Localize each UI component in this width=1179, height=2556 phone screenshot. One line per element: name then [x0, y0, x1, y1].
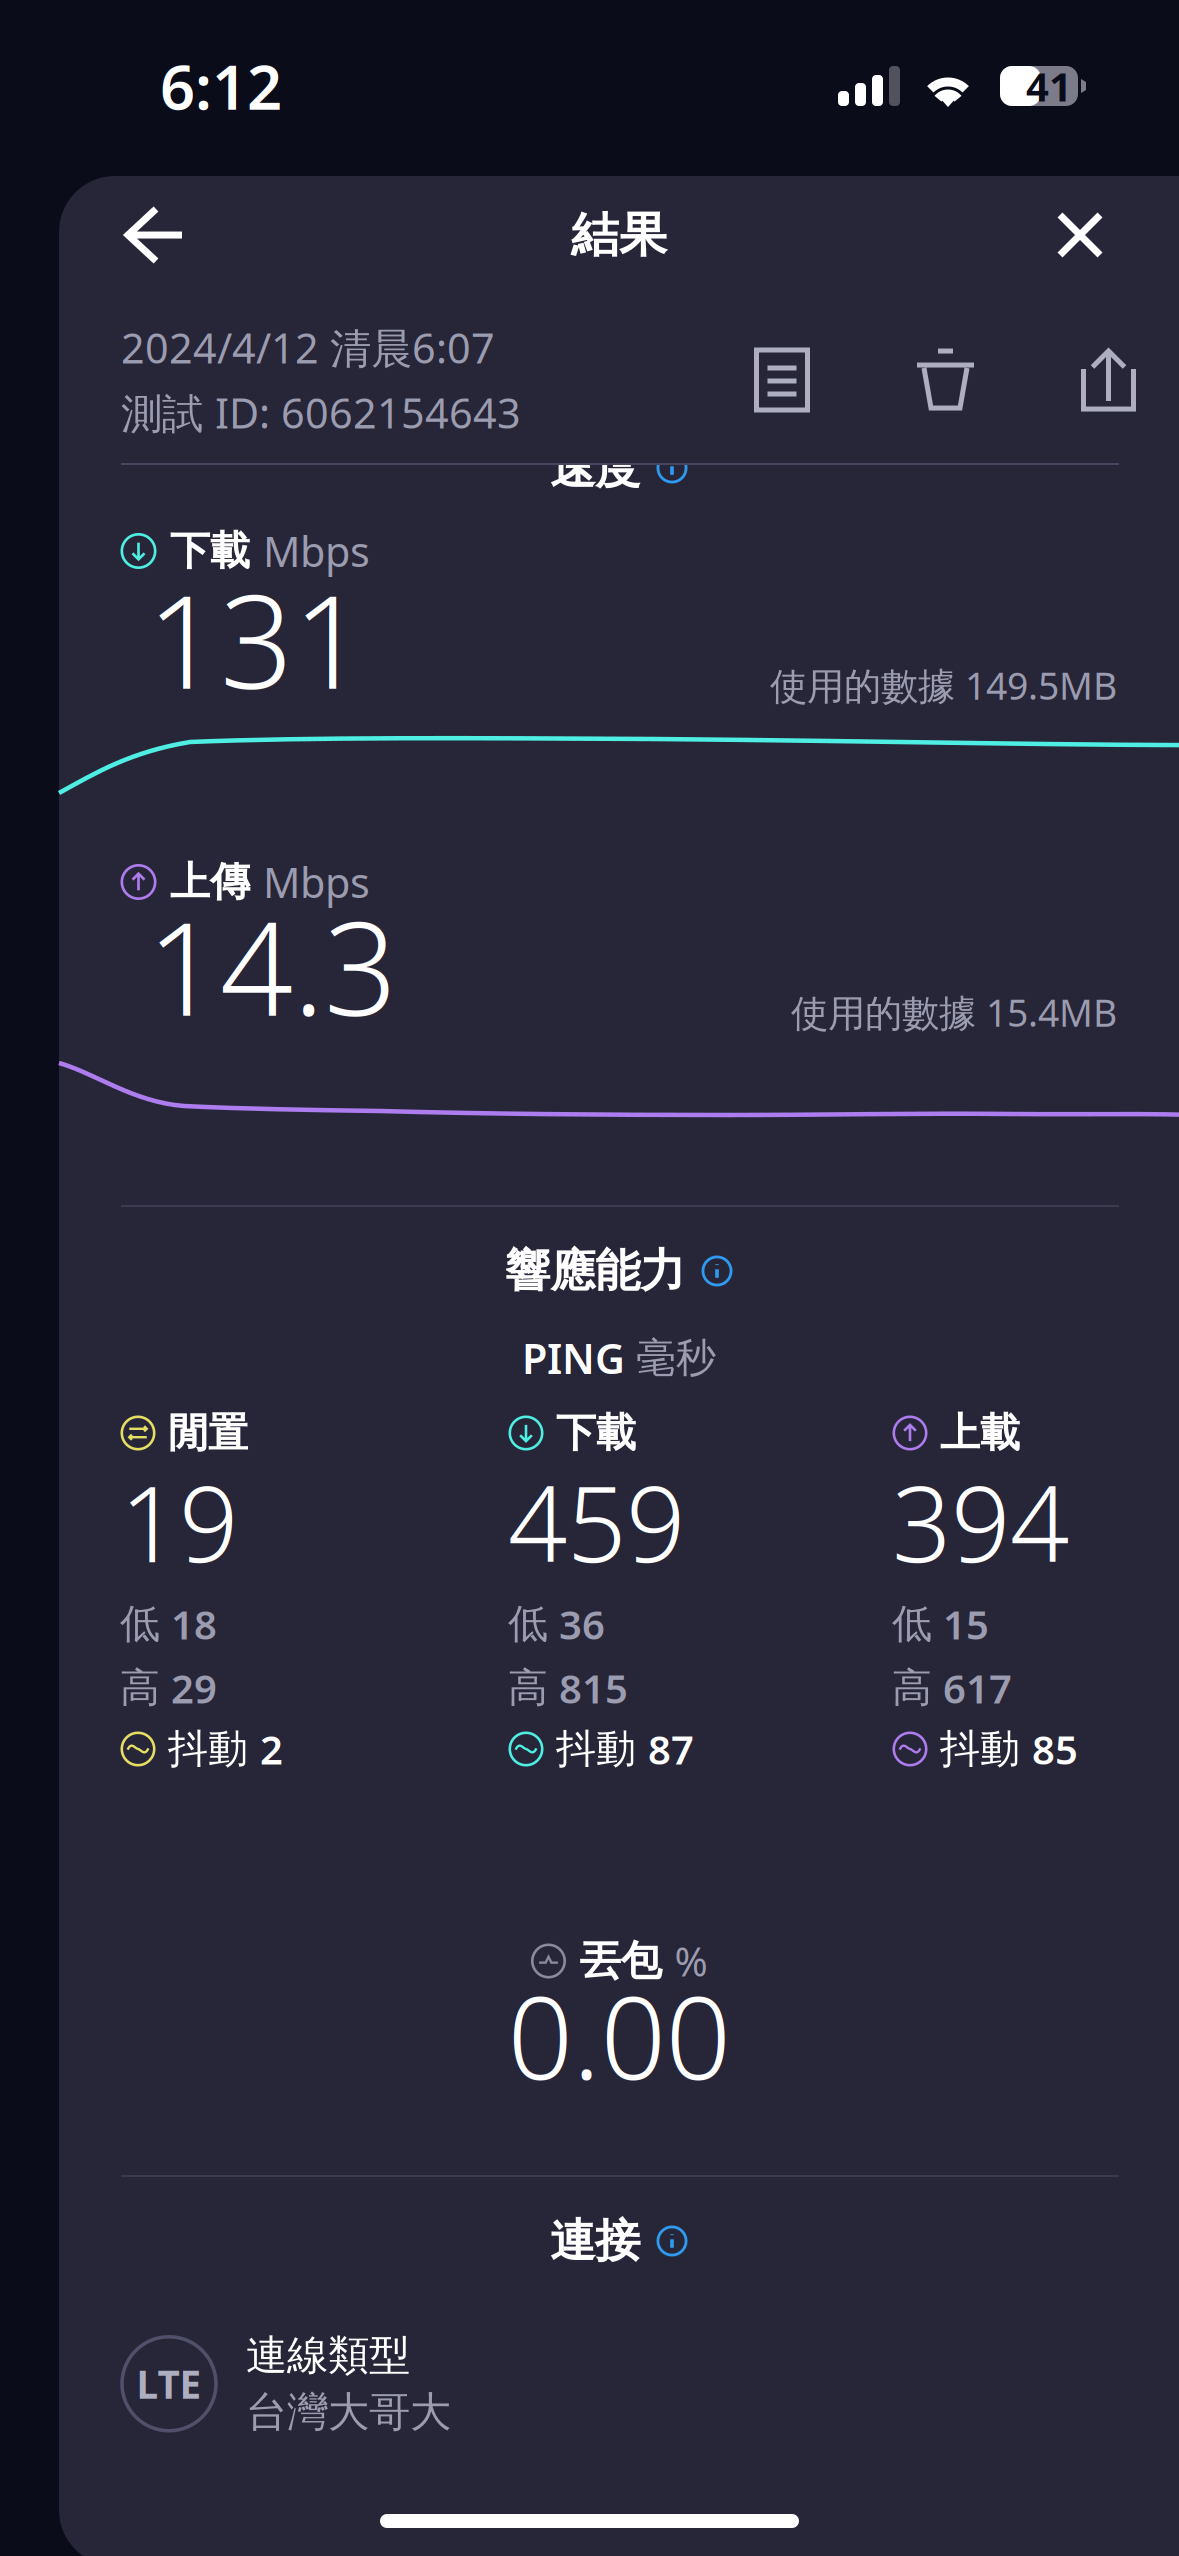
staticText: Mbps: [263, 524, 370, 578]
staticText: 抖動: [556, 1724, 636, 1773]
staticText: 結果: [571, 205, 667, 264]
staticText: 394: [892, 1453, 1069, 1591]
button[interactable]: Back: [123, 200, 213, 270]
staticText: 85: [1032, 1722, 1078, 1775]
staticText: 連線類型: [246, 2330, 410, 2381]
staticText: 上傳: [170, 857, 250, 906]
staticText: 0.00: [507, 1959, 730, 2111]
staticText: LTE: [136, 2358, 201, 2409]
staticText: 高: [120, 1663, 160, 1712]
staticText: 響應能力: [505, 1243, 685, 1299]
staticText: %: [674, 1934, 707, 1987]
staticText: 高: [892, 1663, 932, 1712]
staticText: 87: [648, 1722, 694, 1775]
staticText: 131: [147, 554, 366, 724]
staticText: 29: [171, 1661, 217, 1714]
button[interactable]: Close: [1034, 200, 1104, 270]
staticText: 連接: [550, 2213, 640, 2269]
staticText: 低: [508, 1599, 548, 1648]
staticText: 2024/4/12 清晨6:07: [121, 320, 495, 375]
staticText: 上載: [940, 1408, 1020, 1457]
staticText: 丟包: [579, 1936, 661, 1986]
staticText: 14.3: [147, 881, 397, 1051]
button[interactable]: Test details: [701, 341, 864, 419]
staticText: 速度: [550, 440, 640, 496]
staticText: PING: [522, 1331, 625, 1385]
staticText: 抖動: [940, 1724, 1020, 1773]
staticText: 高: [508, 1663, 548, 1712]
staticText: Mbps: [263, 855, 370, 909]
staticText: 使用的數據 15.4MB: [791, 987, 1117, 1037]
staticText: 閒置: [168, 1408, 248, 1457]
staticText: 使用的數據 149.5MB: [770, 660, 1117, 710]
staticText: 台灣大哥大: [246, 2387, 451, 2438]
staticText: 6:12: [160, 45, 282, 127]
staticText: 抖動: [168, 1724, 248, 1773]
staticText: 測試 ID: 6062154643: [121, 385, 521, 440]
staticText: 低: [892, 1599, 932, 1648]
staticText: 36: [559, 1597, 605, 1650]
staticText: 下載: [170, 526, 250, 575]
staticText: 19: [120, 1453, 238, 1591]
staticText: 617: [943, 1661, 1012, 1714]
staticText: 18: [171, 1597, 217, 1650]
staticText: 低: [120, 1599, 160, 1648]
staticText: 2: [260, 1722, 283, 1775]
staticText: 459: [508, 1453, 685, 1591]
staticText: 815: [559, 1661, 628, 1714]
staticText: 41: [1026, 59, 1072, 112]
staticText: 15: [943, 1597, 989, 1650]
staticText: 毫秒: [636, 1333, 716, 1382]
button[interactable]: Share result: [1027, 341, 1179, 419]
button[interactable]: Delete result: [864, 341, 1027, 419]
staticText: 下載: [556, 1408, 636, 1457]
